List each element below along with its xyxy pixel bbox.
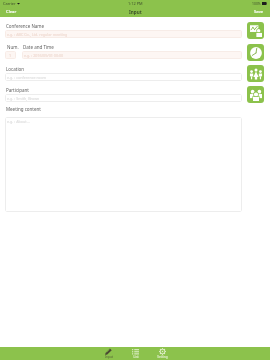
button[interactable]: Setting	[149, 347, 176, 360]
staticText: e.g. : 2016/05/01 00:00	[24, 53, 64, 58]
staticText: Clear	[6, 9, 17, 15]
staticText: Setting	[157, 355, 168, 359]
button[interactable]: e.g. : conference room	[5, 73, 242, 81]
staticText: e.g. : About...	[7, 119, 30, 124]
button[interactable]: 1	[5, 51, 16, 59]
staticText: Location	[6, 66, 25, 72]
staticText: Input	[129, 9, 142, 15]
button[interactable]: e.g. : About...	[5, 117, 242, 212]
button[interactable]: Pick date and time	[247, 44, 264, 61]
button[interactable]: Clear	[0, 7, 23, 17]
button[interactable]: Save	[248, 7, 270, 17]
staticText: Carrier	[3, 1, 16, 6]
staticText: 1	[9, 53, 12, 58]
staticText: Meeting content	[6, 106, 41, 112]
button[interactable]: e.g. : Smith, Brown	[5, 94, 242, 102]
staticText: Participant	[6, 87, 29, 93]
staticText: 100%	[252, 1, 261, 6]
staticText: Date and Time	[23, 44, 54, 50]
staticText: e.g. : conference room	[7, 75, 46, 80]
button[interactable]: e.g. : 2016/05/01 00:00	[22, 51, 242, 59]
staticText: 1:12 PM	[128, 1, 143, 6]
staticText: e.g. : ABC Co., Ltd. regular meeting	[7, 32, 68, 37]
staticText: e.g. : Smith, Brown	[7, 96, 40, 101]
staticText: Save	[254, 9, 264, 15]
button[interactable]: Pick participants	[247, 86, 264, 103]
button[interactable]: Input	[95, 347, 122, 360]
staticText: Input	[105, 355, 113, 359]
button[interactable]: e.g. : ABC Co., Ltd. regular meeting	[5, 30, 242, 38]
button[interactable]: Pick meeting room	[247, 65, 264, 82]
staticText: Conference Name	[6, 23, 45, 29]
button[interactable]: Scan document	[247, 22, 264, 39]
staticText: List	[133, 355, 139, 359]
staticText: Num.	[7, 44, 19, 50]
button[interactable]: List	[122, 347, 149, 360]
